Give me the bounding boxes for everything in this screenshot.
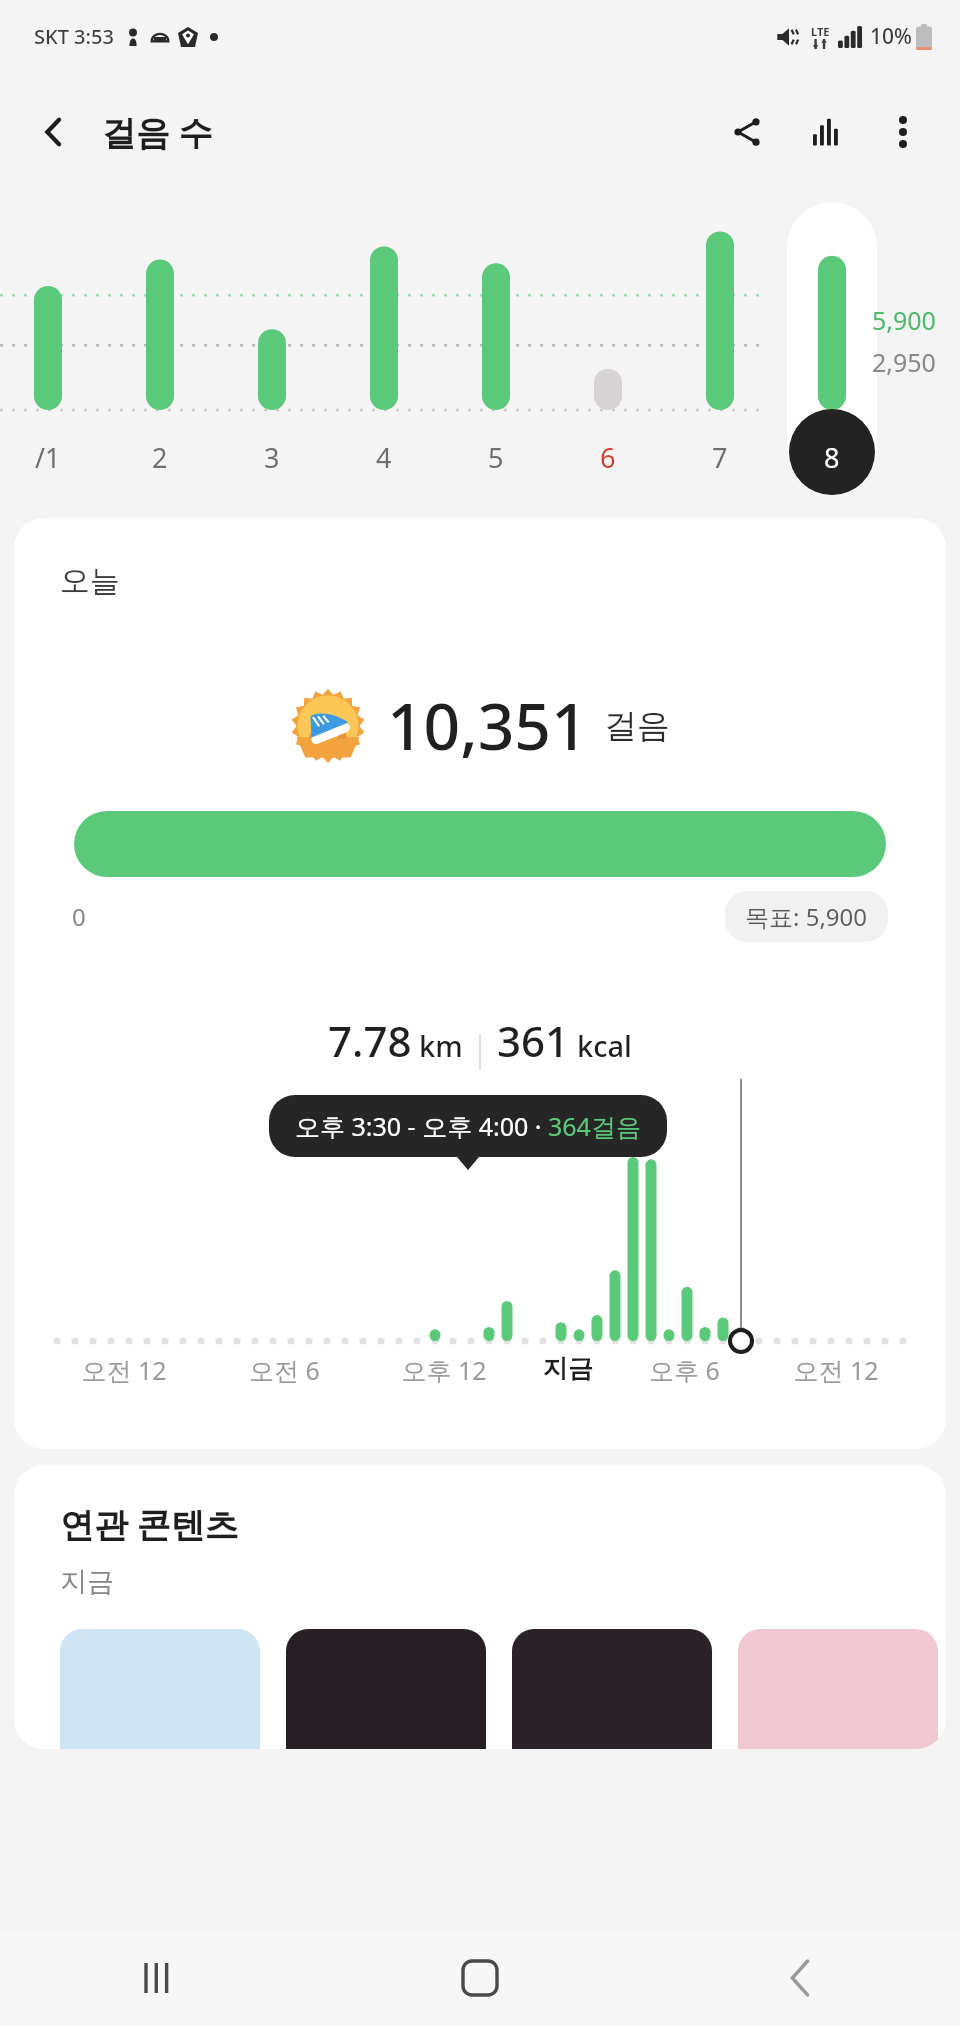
staticText: 10% bbox=[870, 22, 912, 51]
staticText: 7.78 bbox=[328, 1012, 412, 1069]
button[interactable] bbox=[60, 1629, 260, 1749]
button[interactable]: More options bbox=[870, 99, 936, 165]
staticText: 0 bbox=[72, 900, 86, 933]
staticText: 오전 12 bbox=[793, 1353, 879, 1387]
button[interactable]: Back bbox=[640, 1930, 960, 2026]
staticText: 4 bbox=[376, 439, 392, 476]
button[interactable]: Back bbox=[24, 102, 84, 162]
staticText: 7 bbox=[712, 439, 728, 476]
staticText: 10,351 bbox=[387, 682, 588, 769]
staticText: kcal bbox=[577, 1026, 632, 1065]
staticText: 연관 콘텐츠 bbox=[60, 1501, 239, 1547]
button[interactable]: Recents bbox=[0, 1930, 320, 2026]
button[interactable] bbox=[286, 1629, 486, 1749]
staticText: 오후 3:30 - 오후 4:00 · bbox=[295, 1109, 548, 1143]
staticText: SKT 3:53 bbox=[34, 23, 114, 50]
staticText: km bbox=[419, 1026, 463, 1065]
staticText: 361 bbox=[497, 1012, 570, 1069]
staticText: 지금 bbox=[60, 1565, 114, 1599]
button[interactable] bbox=[512, 1629, 712, 1749]
staticText: 오후 12 bbox=[401, 1353, 487, 1387]
staticText: 2,950 bbox=[872, 345, 936, 379]
staticText: 6 bbox=[600, 439, 616, 476]
staticText: 3 bbox=[264, 439, 280, 476]
button[interactable]: 오늘 bbox=[14, 518, 946, 1449]
staticText: 오후 6 bbox=[649, 1353, 720, 1387]
staticText: 오전 6 bbox=[249, 1353, 320, 1387]
staticText: /1 bbox=[35, 439, 61, 476]
staticText: 8 bbox=[824, 439, 840, 476]
staticText: 오전 12 bbox=[81, 1353, 167, 1387]
button[interactable]: Home bbox=[320, 1930, 640, 2026]
staticText: 2 bbox=[152, 439, 168, 476]
staticText: 목표: 5,900 bbox=[745, 900, 868, 933]
button[interactable]: Share bbox=[714, 99, 780, 165]
staticText: 5,900 bbox=[872, 303, 936, 337]
staticText: 걸음 수 bbox=[102, 109, 213, 155]
button[interactable] bbox=[738, 1629, 938, 1749]
staticText: 걸음 bbox=[604, 705, 670, 747]
staticText: 지금 bbox=[543, 1353, 593, 1384]
button[interactable]: 연관 콘텐츠 bbox=[14, 1465, 946, 1749]
staticText: 364걸음 bbox=[548, 1109, 641, 1143]
staticText: 5 bbox=[488, 439, 504, 476]
staticText: 오늘 bbox=[60, 562, 120, 600]
button[interactable]: Chart bbox=[794, 99, 860, 165]
staticText: LTE bbox=[811, 24, 830, 39]
